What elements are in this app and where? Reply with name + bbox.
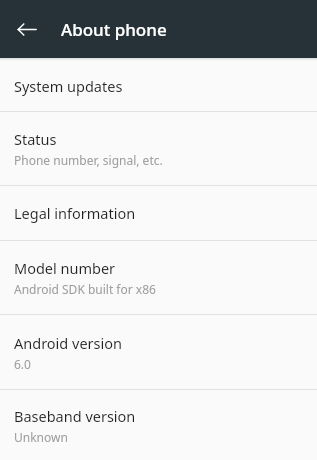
button[interactable]: Navigate up (5, 7, 49, 51)
staticText: Android SDK built for x86 (14, 281, 156, 297)
button[interactable]: Legal information (0, 186, 317, 240)
staticText: System updates (14, 76, 123, 96)
staticText: 6.0 (14, 356, 31, 372)
staticText: Phone number, signal, etc. (14, 152, 163, 168)
staticText: Android version (14, 333, 122, 353)
button[interactable]: Android version (0, 315, 317, 389)
staticText: Status (14, 129, 57, 149)
staticText: Legal information (14, 203, 136, 223)
button[interactable]: Model number (0, 241, 317, 314)
button[interactable]: Status (0, 112, 317, 185)
button[interactable]: Baseband version (0, 390, 317, 460)
staticText: Unknown (14, 429, 68, 445)
staticText: Baseband version (14, 406, 136, 426)
staticText: Model number (14, 258, 116, 278)
staticText: About phone (61, 18, 167, 41)
button[interactable]: System updates (0, 61, 317, 111)
